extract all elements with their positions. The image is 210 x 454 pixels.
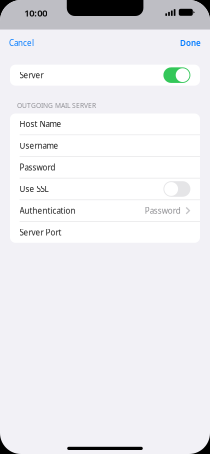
button[interactable]: Authentication [10, 200, 200, 221]
staticText: 10:00 [24, 7, 47, 19]
staticText: Password [145, 205, 181, 216]
button[interactable]: Host Name [10, 113, 200, 134]
button[interactable]: Done [163, 33, 210, 53]
staticText: Done [180, 38, 201, 48]
button[interactable]: Username [10, 135, 200, 156]
staticText: OUTGOING MAIL SERVER [17, 101, 96, 110]
button[interactable]: Server Port [10, 222, 200, 243]
staticText: Server [20, 70, 44, 80]
staticText: Cancel [9, 38, 34, 48]
staticText: Password [20, 162, 56, 173]
button[interactable]: Server [10, 65, 200, 86]
button[interactable]: Password [10, 157, 200, 178]
button[interactable]: Use SSL [10, 178, 200, 199]
button[interactable]: Cancel [0, 33, 53, 53]
staticText: Authentication [20, 205, 76, 216]
staticText: Username [20, 140, 59, 151]
staticText: Host Name [20, 119, 62, 129]
staticText: Use SSL [20, 184, 49, 194]
staticText: Server Port [20, 227, 62, 238]
